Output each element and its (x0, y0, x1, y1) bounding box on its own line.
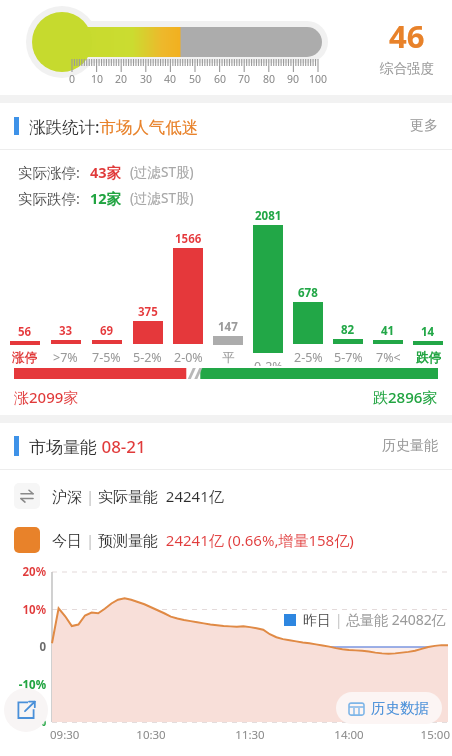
button[interactable]: 涨跌统计:市场人气低迷 (0, 103, 452, 149)
staticText: 市场量能 08-21 (29, 435, 146, 458)
staticText: 今日 | 预测量能 24241亿 (0.66%,增量158亿) (52, 530, 354, 550)
staticText: 40 (155, 72, 185, 86)
staticText: -20% (2, 714, 46, 730)
staticText: 100 (303, 72, 333, 86)
staticText: 30 (131, 72, 161, 86)
staticText: 43家 (90, 162, 122, 182)
staticText: 平 (222, 350, 235, 366)
staticText: 10 (82, 72, 112, 86)
staticText: 历史量能 (382, 437, 438, 455)
staticText: 涨停 (12, 350, 37, 366)
staticText: 昨日 | 总量能 24082亿 (303, 610, 446, 629)
staticText: 2-0% (174, 349, 203, 366)
staticText: 50 (180, 72, 210, 86)
staticText: 跌2896家 (373, 387, 438, 407)
staticText: 0-2% (254, 358, 283, 366)
staticText: 46 (389, 15, 425, 57)
staticText: 20% (2, 564, 46, 580)
staticText: 33 (59, 323, 73, 339)
staticText: 7%< (376, 349, 401, 366)
staticText: (过滤ST股) (130, 189, 194, 207)
staticText: 20 (106, 72, 136, 86)
staticText: 2-5% (294, 349, 323, 366)
staticText: 12家 (90, 188, 122, 208)
staticText: 147 (218, 319, 238, 335)
staticText: 综合强度 (380, 60, 434, 77)
staticText: 5-7% (334, 349, 363, 366)
staticText: 56 (18, 324, 32, 340)
button[interactable]: 历史数据 (336, 692, 442, 724)
staticText: 涨跌统计:市场人气低迷 (29, 115, 199, 138)
staticText: 跌停 (416, 350, 441, 366)
staticText: -10% (2, 677, 46, 693)
button[interactable]: 今日 | 预测量能 24241亿 (0.66%,增量158亿) (14, 522, 452, 558)
staticText: 90 (278, 72, 308, 86)
staticText: >7% (53, 349, 78, 366)
staticText: 70 (229, 72, 259, 86)
staticText: 11:30 (227, 727, 273, 743)
button[interactable]: 切换市场 (14, 478, 452, 514)
staticText: 2081 (255, 208, 282, 224)
button[interactable]: 市场量能 08-21 (0, 423, 452, 469)
other: 切换市场 (14, 483, 40, 509)
staticText: 678 (298, 285, 318, 301)
staticText: 5-2% (133, 349, 162, 366)
staticText: 14 (421, 324, 435, 340)
staticText: 实际跌停: (18, 188, 80, 208)
staticText: (过滤ST股) (130, 163, 194, 181)
staticText: 10:30 (128, 727, 174, 743)
staticText: 7-5% (92, 349, 121, 366)
staticText: 0 (57, 72, 87, 86)
staticText: 14:00 (326, 727, 372, 743)
staticText: 更多 (410, 117, 438, 135)
staticText: 0 (2, 639, 46, 655)
staticText: 375 (138, 304, 158, 320)
staticText: 82 (341, 322, 355, 338)
staticText: 10% (2, 602, 46, 618)
staticText: 15:00 (404, 727, 450, 743)
staticText: 沪深 | 实际量能 24241亿 (52, 486, 224, 506)
staticText: 1566 (175, 231, 202, 247)
staticText: 涨2099家 (14, 387, 79, 407)
staticText: 80 (254, 72, 284, 86)
staticText: 实际涨停: (18, 162, 80, 182)
staticText: 历史数据 (371, 699, 429, 717)
staticText: 41 (381, 323, 395, 339)
staticText: 09:30 (50, 727, 96, 743)
staticText: 69 (100, 323, 114, 339)
button[interactable]: Share (4, 688, 48, 732)
staticText: 60 (205, 72, 235, 86)
